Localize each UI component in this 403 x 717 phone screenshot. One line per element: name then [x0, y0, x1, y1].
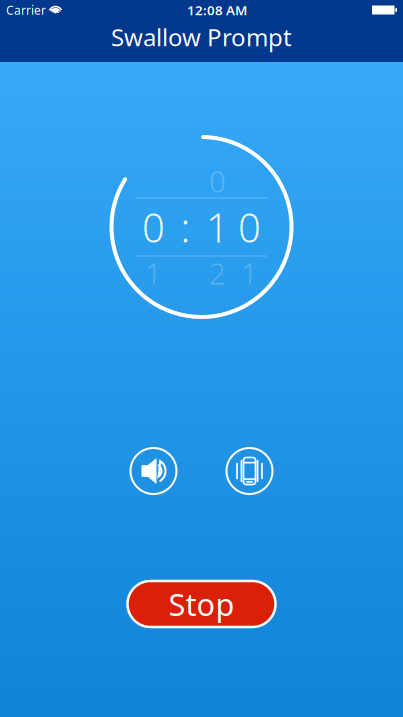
staticText: 12:08 AM — [187, 1, 247, 19]
button[interactable]: Sound alert — [128, 446, 178, 496]
staticText: : — [180, 200, 190, 253]
staticText — [149, 161, 157, 200]
staticText: Swallow Prompt — [111, 21, 292, 53]
button[interactable]: Vibrate alert — [224, 446, 274, 496]
staticText — [245, 161, 253, 200]
staticText: Carrier — [6, 2, 46, 18]
staticText: 1 — [241, 253, 258, 292]
staticText: 2 — [209, 253, 226, 292]
staticText: 1 — [206, 200, 229, 253]
staticText: 0 — [142, 200, 165, 253]
staticText: 0 — [209, 161, 226, 200]
button[interactable]: Stop — [127, 581, 275, 627]
staticText: Stop — [168, 584, 234, 624]
staticText: 0 — [238, 200, 261, 253]
staticText: 1 — [145, 253, 162, 292]
